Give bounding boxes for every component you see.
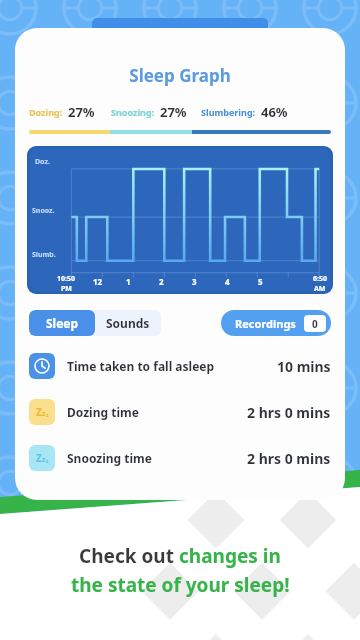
staticText: z: [42, 409, 46, 419]
staticText: 27%: [160, 103, 187, 121]
staticText: 2: [159, 276, 164, 287]
staticText: z: [46, 458, 49, 465]
staticText: Sleep: [46, 315, 79, 331]
staticText: Recordings: [235, 316, 296, 331]
staticText: Z: [36, 405, 42, 419]
staticText: Slumb.: [32, 250, 56, 260]
staticText: 4: [225, 276, 230, 287]
staticText: the state of your sleep!: [71, 572, 290, 598]
staticText: 2 hrs 0 mins: [247, 403, 331, 422]
staticText: changes in: [179, 543, 281, 569]
staticText: z: [46, 412, 49, 419]
staticText: 27%: [68, 103, 95, 121]
staticText: 1: [126, 276, 131, 287]
staticText: Z: [36, 451, 42, 465]
button[interactable]: Recordings: [221, 310, 331, 336]
button[interactable]: [92, 18, 268, 40]
staticText: 2 hrs 0 mins: [247, 449, 331, 468]
staticText: 46%: [261, 103, 288, 121]
button[interactable]: Z: [29, 396, 331, 428]
staticText: Snoozing time: [67, 450, 152, 466]
staticText: 10:50: [57, 274, 75, 284]
staticText: 3: [192, 276, 197, 287]
button[interactable]: Time taken to fall asleep: [29, 350, 331, 382]
staticText: Slumbering:: [201, 106, 256, 118]
button[interactable]: Sleep: [29, 310, 95, 336]
staticText: Sleep Graph: [15, 64, 345, 87]
staticText: Time taken to fall asleep: [67, 358, 215, 374]
staticText: Sounds: [106, 315, 150, 331]
staticText: 6:50: [313, 274, 327, 284]
staticText: 0: [312, 317, 318, 331]
staticText: AM: [314, 284, 326, 294]
staticText: Dozing time: [67, 404, 139, 420]
staticText: Doz.: [35, 157, 50, 167]
staticText: 5: [258, 276, 263, 287]
staticText: Snoozing:: [111, 106, 155, 118]
staticText: z: [42, 455, 46, 465]
staticText: 12: [93, 276, 103, 287]
staticText: Dozing:: [29, 106, 63, 118]
staticText: Snooz.: [32, 206, 55, 216]
staticText: 10 mins: [277, 357, 331, 376]
staticText: PM: [61, 284, 72, 294]
button[interactable]: Sounds: [95, 310, 161, 336]
staticText: Check out: [79, 543, 179, 569]
button[interactable]: Z: [29, 442, 331, 474]
